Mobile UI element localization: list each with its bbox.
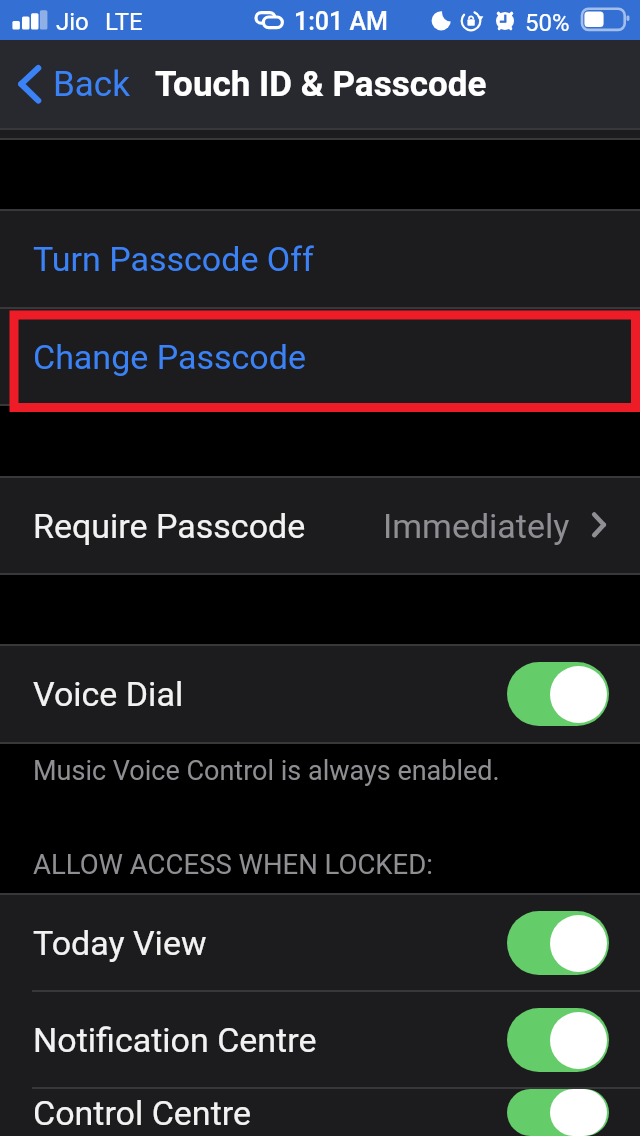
button[interactable]: Today View toggle <box>507 911 609 975</box>
other: Back <box>16 62 42 106</box>
staticText: 50% <box>525 9 570 37</box>
button[interactable]: Control Centre toggle <box>507 1089 609 1136</box>
button[interactable]: Turn Passcode Off <box>0 211 640 307</box>
staticText: Immediately <box>383 506 570 546</box>
staticText: Music Voice Control is always enabled. <box>33 755 500 787</box>
staticText: Turn Passcode Off <box>33 239 314 279</box>
staticText: Touch ID & Passcode <box>155 64 487 105</box>
staticText: ALLOW ACCESS WHEN LOCKED: <box>33 848 433 880</box>
staticText: Back <box>53 64 130 105</box>
staticText: LTE <box>105 8 143 36</box>
staticText: Notification Centre <box>33 1020 317 1060</box>
button[interactable]: Change Passcode <box>0 309 640 404</box>
button[interactable]: Notification Centre toggle <box>507 1008 609 1072</box>
button[interactable]: Require Passcode <box>0 478 640 573</box>
staticText: Jio <box>56 8 89 36</box>
staticText: 1:01 AM <box>294 7 389 36</box>
staticText: Require Passcode <box>33 506 306 546</box>
staticText: Change Passcode <box>33 337 306 377</box>
button[interactable]: Voice Dial toggle <box>507 662 609 726</box>
button[interactable]: Back <box>8 40 138 128</box>
staticText: Voice Dial <box>33 674 184 714</box>
staticText: Control Centre <box>33 1093 251 1133</box>
staticText: Today View <box>33 923 207 963</box>
